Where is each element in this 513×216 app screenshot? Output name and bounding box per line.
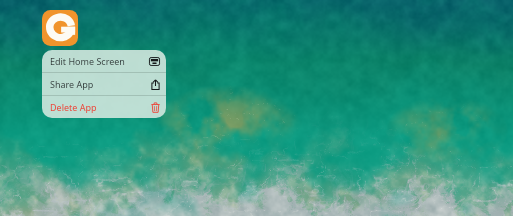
button[interactable]: App icon G	[42, 10, 78, 46]
button[interactable]: Delete App	[42, 96, 166, 118]
staticText: Share App	[50, 78, 151, 90]
button[interactable]: Edit Home Screen	[42, 50, 166, 72]
staticText: Edit Home Screen	[50, 55, 149, 67]
staticText: Delete App	[50, 101, 151, 113]
button[interactable]: Share App	[42, 73, 166, 95]
